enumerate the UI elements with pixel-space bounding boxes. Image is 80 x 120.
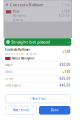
staticText: Straight bet placed <box>11 39 50 45</box>
staticText: Serie A <box>13 18 23 22</box>
staticText: › <box>68 39 69 45</box>
button[interactable]: Straight bet placed <box>4 38 71 46</box>
staticText: Odds <box>5 70 12 74</box>
staticText: $20.00 <box>59 63 70 67</box>
button[interactable]: Never mind <box>5 106 36 115</box>
staticText: Contests Rollover <box>10 2 44 7</box>
staticText: $26.00 <box>59 77 70 80</box>
button[interactable]: Done <box>39 106 70 115</box>
staticText: +130 <box>62 70 70 74</box>
staticText: +130 <box>62 50 70 53</box>
staticText: Share bet <box>32 97 46 100</box>
staticText: Contests Rollover <box>5 48 30 51</box>
staticText: Wager <box>5 63 13 67</box>
staticText: ⇪ <box>29 97 31 100</box>
staticText: To win <box>5 77 14 80</box>
staticText: 1 leg <box>62 3 70 6</box>
staticText: Milan <box>13 10 20 13</box>
staticText: Moneyline <box>13 14 27 17</box>
staticText: Total payout <box>5 84 21 87</box>
staticText: Sun 8:15 PM · Serie A <box>5 52 36 55</box>
staticText: Never mind <box>13 108 29 112</box>
button[interactable]: ⇪ <box>5 94 70 103</box>
staticText: +130 <box>62 10 70 13</box>
staticText: Done <box>51 108 59 112</box>
staticText: $46.00 <box>59 84 70 87</box>
staticText: $20.00 <box>59 14 70 17</box>
staticText: Milan Moneyline <box>12 57 35 60</box>
